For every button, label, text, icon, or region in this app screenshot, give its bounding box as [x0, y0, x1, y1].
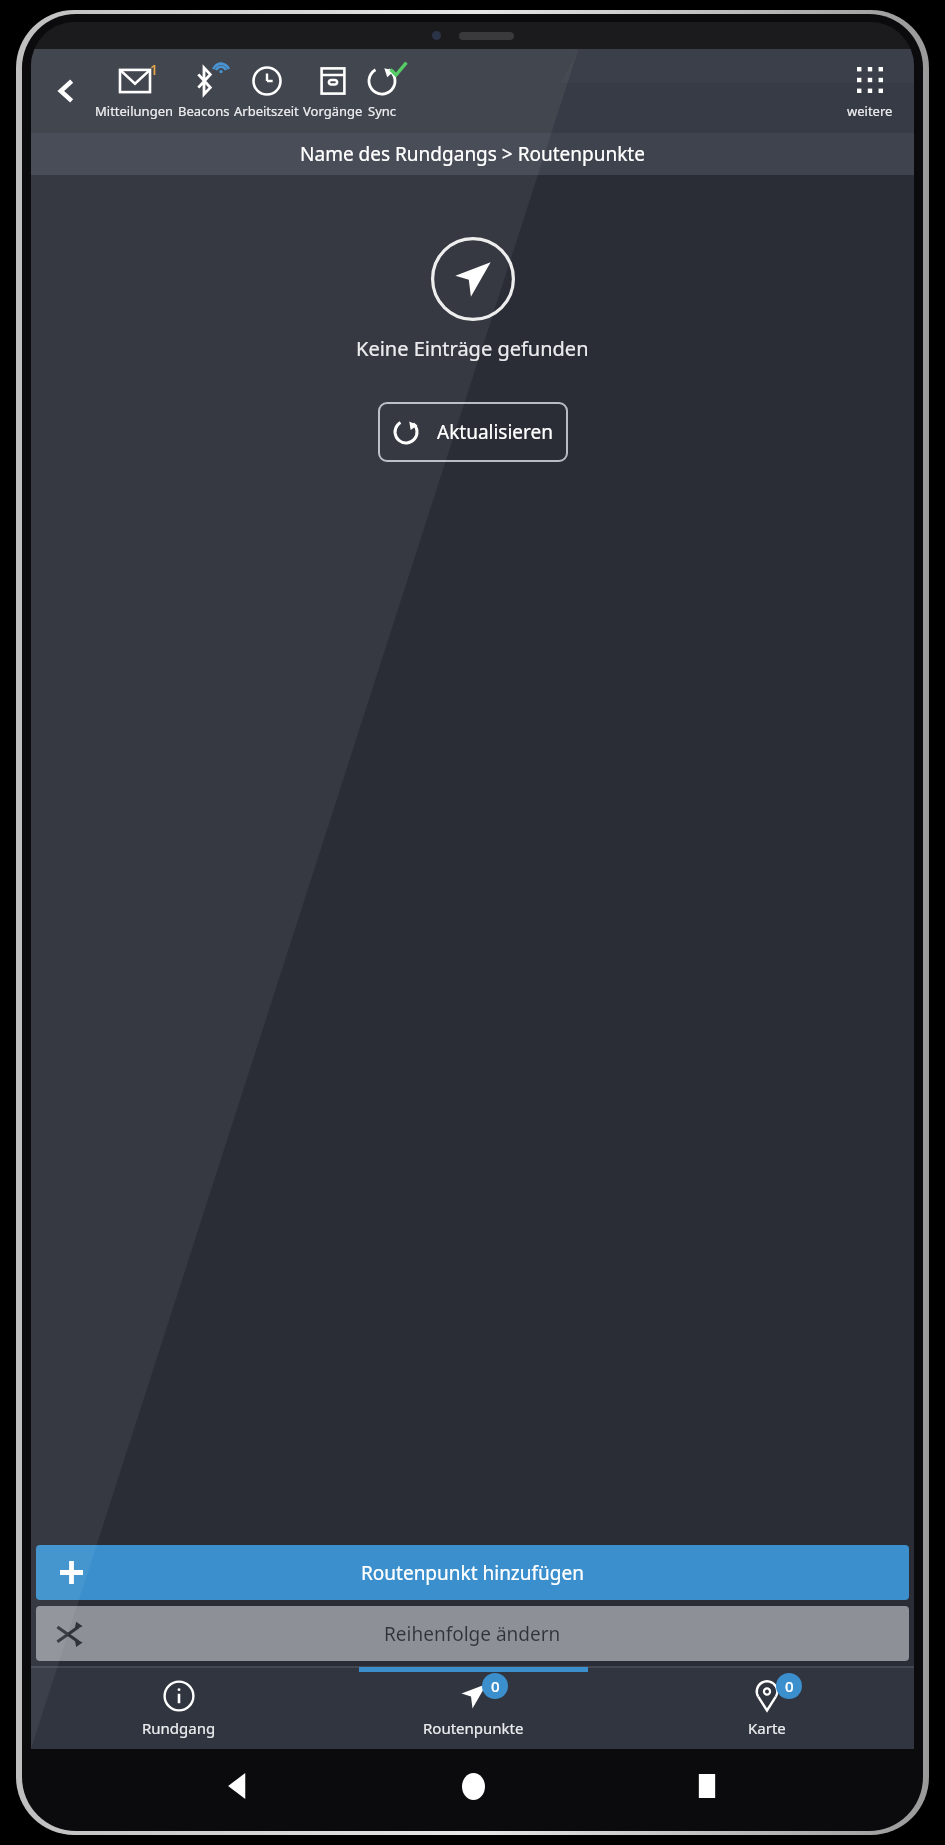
- staticText: 0: [491, 1676, 500, 1696]
- button[interactable]: Letzte Apps: [680, 1759, 734, 1813]
- button[interactable]: Rundgang: [31, 1667, 326, 1749]
- button[interactable]: Startbildschirm: [446, 1759, 500, 1813]
- staticText: Routenpunkte: [423, 1718, 524, 1738]
- staticText: Sync: [368, 102, 397, 120]
- staticText: 0: [785, 1676, 794, 1696]
- staticText: Arbeitszeit: [234, 102, 299, 120]
- button[interactable]: Zurück: [211, 1759, 265, 1813]
- button[interactable]: Zurück: [41, 65, 93, 117]
- staticText: Beacons: [178, 102, 230, 120]
- staticText: Vorgänge: [303, 102, 363, 120]
- staticText: weitere: [847, 102, 893, 120]
- button[interactable]: Routenpunkt hinzufügen: [36, 1545, 909, 1600]
- staticText: 1: [150, 60, 159, 79]
- staticText: Name des Rundgangs > Routenpunkte: [300, 141, 645, 167]
- staticText: Rundgang: [142, 1718, 216, 1738]
- staticText: Mitteilungen: [95, 102, 174, 120]
- button[interactable]: Vorgänge: [303, 63, 363, 120]
- staticText: Aktualisieren: [437, 419, 553, 445]
- button[interactable]: 0: [620, 1667, 914, 1749]
- button[interactable]: Sync: [367, 63, 397, 120]
- button[interactable]: 1: [95, 63, 174, 120]
- staticText: Routenpunkt hinzufügen: [361, 1560, 584, 1586]
- button[interactable]: Arbeitszeit: [234, 63, 299, 120]
- button[interactable]: weitere: [834, 63, 906, 120]
- button[interactable]: Aktualisieren: [378, 402, 568, 462]
- staticText: Karte: [748, 1718, 786, 1738]
- staticText: Reihenfolge ändern: [384, 1621, 561, 1647]
- button[interactable]: 0: [326, 1667, 620, 1749]
- button[interactable]: Reihenfolge ändern: [36, 1606, 909, 1661]
- button[interactable]: Beacons: [178, 63, 230, 120]
- staticText: Keine Einträge gefunden: [356, 335, 589, 362]
